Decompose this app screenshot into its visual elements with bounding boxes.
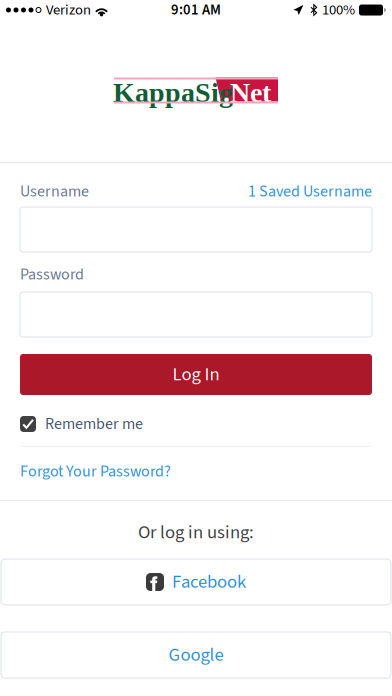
button[interactable]: 1 Saved Username bbox=[248, 180, 372, 203]
staticText: KappaSig bbox=[113, 77, 233, 108]
staticText: Username bbox=[20, 180, 89, 203]
staticText: Remember me bbox=[45, 413, 143, 435]
button[interactable]: Facebook bbox=[1, 559, 391, 605]
staticText: 9:01 AM bbox=[171, 0, 221, 20]
button[interactable]: Remember me bbox=[20, 416, 372, 432]
staticText: Log In bbox=[172, 361, 219, 388]
staticText: Google bbox=[168, 642, 223, 668]
staticText: .Net bbox=[223, 77, 271, 108]
staticText: Facebook bbox=[172, 569, 246, 595]
staticText: Password bbox=[20, 263, 84, 286]
staticText: Or log in using: bbox=[138, 519, 254, 546]
staticText: Forgot Your Password? bbox=[20, 460, 171, 483]
staticText: 100% bbox=[322, 0, 355, 20]
button[interactable]: Google bbox=[1, 632, 391, 678]
button[interactable]: Log In bbox=[20, 354, 372, 395]
button[interactable]: Forgot Your Password? bbox=[20, 463, 372, 480]
staticText: 1 Saved Username bbox=[248, 180, 372, 203]
staticText: Verizon bbox=[46, 0, 91, 20]
